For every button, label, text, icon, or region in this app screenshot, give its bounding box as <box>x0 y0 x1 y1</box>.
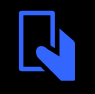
button[interactable]: Mobile app <box>0 0 95 94</box>
